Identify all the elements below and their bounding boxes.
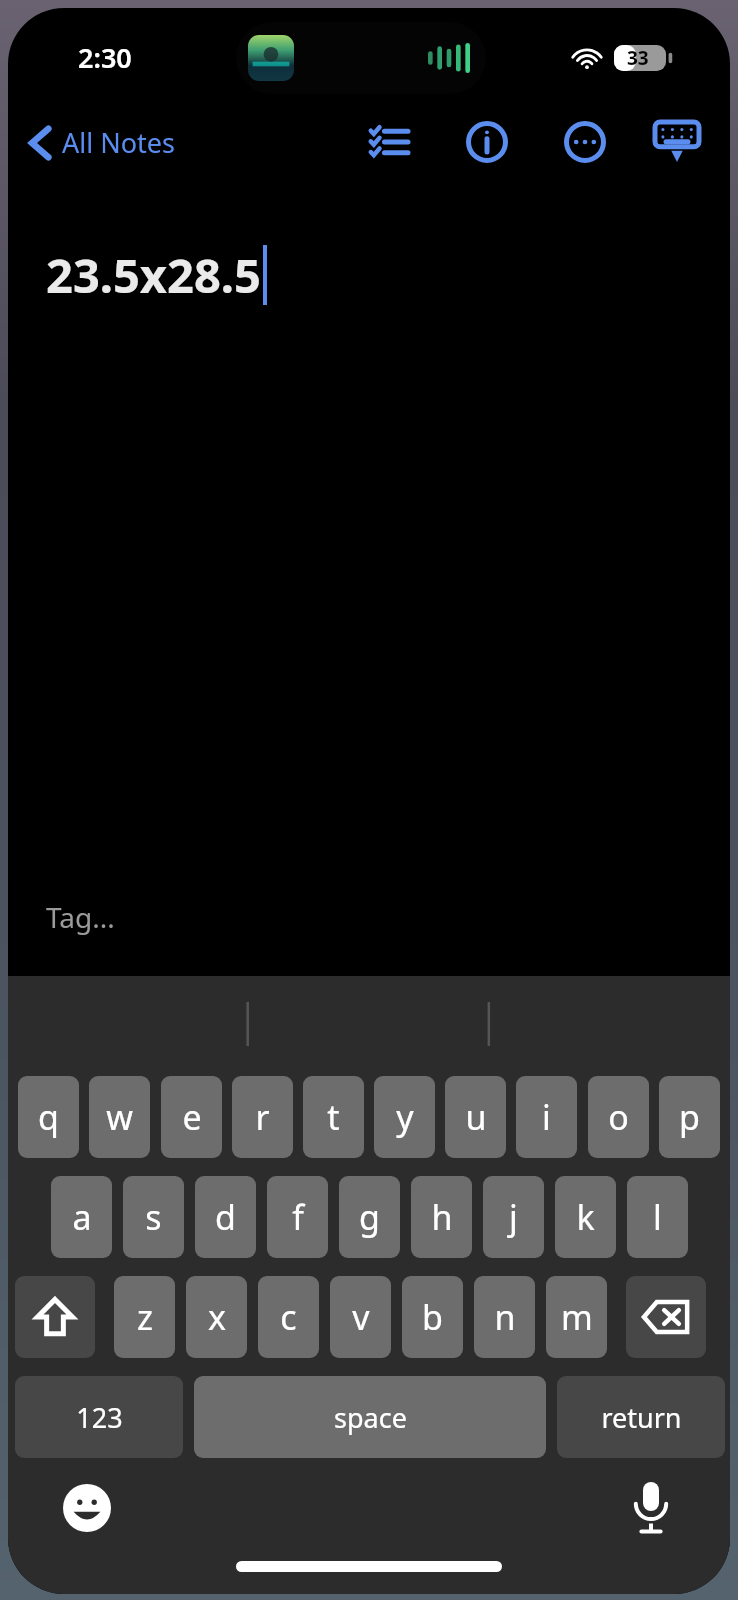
button[interactable]: u [445, 1076, 506, 1158]
staticText: d [215, 1194, 236, 1240]
button[interactable]: h [411, 1176, 472, 1258]
button[interactable]: r [232, 1076, 293, 1158]
staticText: r [255, 1094, 270, 1140]
button[interactable]: b [402, 1276, 463, 1358]
button[interactable]: n [474, 1276, 535, 1358]
staticText: return [601, 1399, 682, 1436]
staticText: g [359, 1194, 380, 1240]
staticText: k [576, 1194, 595, 1240]
button[interactable]: e [161, 1076, 222, 1158]
staticText: p [679, 1094, 700, 1140]
button[interactable]: Shift [15, 1276, 95, 1358]
button[interactable]: Checklist [358, 111, 420, 173]
button[interactable]: s [123, 1176, 184, 1258]
staticText: x [208, 1294, 226, 1340]
staticText: o [608, 1094, 629, 1140]
button[interactable]: 123 [15, 1376, 183, 1458]
staticText: 23.5x28.5 [46, 243, 261, 307]
staticText: w [106, 1094, 133, 1140]
button[interactable]: o [588, 1076, 649, 1158]
staticText: h [431, 1194, 453, 1240]
button[interactable]: Backspace [626, 1276, 706, 1358]
button[interactable]: Tag... [46, 898, 115, 936]
staticText: 2:30 [78, 39, 132, 76]
button[interactable]: k [555, 1176, 616, 1258]
button[interactable]: More options [554, 111, 616, 173]
button[interactable]: t [303, 1076, 364, 1158]
staticText: 33 [627, 45, 649, 71]
staticText: j [509, 1194, 518, 1240]
staticText: u [465, 1094, 487, 1140]
staticText: All Notes [62, 124, 175, 161]
button[interactable]: z [114, 1276, 175, 1358]
button[interactable]: space [194, 1376, 546, 1458]
staticText: l [653, 1194, 662, 1240]
staticText: i [542, 1094, 551, 1140]
button[interactable]: Dictation [616, 1473, 686, 1543]
button[interactable]: i [516, 1076, 577, 1158]
staticText: z [137, 1294, 153, 1340]
button[interactable]: v [330, 1276, 391, 1358]
button[interactable]: f [267, 1176, 328, 1258]
staticText: c [280, 1294, 297, 1340]
staticText: m [561, 1294, 593, 1340]
button[interactable]: x [186, 1276, 247, 1358]
button[interactable]: y [374, 1076, 435, 1158]
button[interactable]: Hide keyboard [646, 111, 708, 173]
button[interactable]: a [51, 1176, 112, 1258]
button[interactable]: All Notes [24, 118, 181, 167]
staticText: t [327, 1094, 340, 1140]
staticText: a [72, 1194, 92, 1240]
button[interactable]: g [339, 1176, 400, 1258]
button[interactable]: j [483, 1176, 544, 1258]
button[interactable]: p [659, 1076, 720, 1158]
staticText: s [145, 1194, 162, 1240]
staticText: n [494, 1294, 516, 1340]
button[interactable]: return [557, 1376, 725, 1458]
button[interactable]: Info [456, 111, 518, 173]
staticText: f [292, 1194, 304, 1240]
staticText: q [38, 1094, 59, 1140]
button[interactable]: m [546, 1276, 607, 1358]
button[interactable]: c [258, 1276, 319, 1358]
button[interactable]: d [195, 1176, 256, 1258]
button[interactable]: Emoji [52, 1473, 122, 1543]
button[interactable]: q [18, 1076, 79, 1158]
button[interactable]: w [89, 1076, 150, 1158]
staticText: space [334, 1399, 407, 1436]
staticText: e [182, 1094, 202, 1140]
button[interactable]: l [627, 1176, 688, 1258]
staticText: b [422, 1294, 443, 1340]
staticText: 123 [76, 1399, 123, 1436]
staticText: v [352, 1294, 370, 1340]
staticText: y [396, 1094, 414, 1140]
